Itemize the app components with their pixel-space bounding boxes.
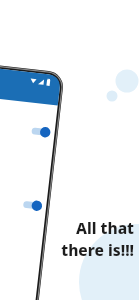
button[interactable]: All that (61, 217, 134, 260)
button[interactable]: App preview (0, 0, 139, 300)
staticText: there is!!! (61, 239, 134, 260)
staticText: All that (75, 217, 134, 238)
